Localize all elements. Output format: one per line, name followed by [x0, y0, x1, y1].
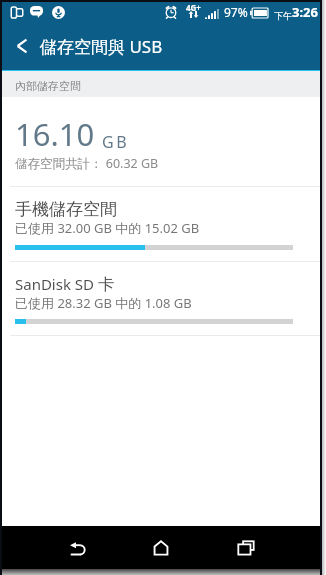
staticText: 下午 — [274, 10, 292, 21]
staticText: 手機儲存空間 — [15, 199, 117, 220]
staticText: 內部儲存空間 — [15, 79, 81, 93]
button[interactable]: Navigate up — [0, 27, 38, 65]
button[interactable]: Back — [47, 526, 105, 569]
staticText: 16.10 — [15, 113, 95, 155]
staticText: 已使用 32.00 GB 中的 15.02 GB — [15, 219, 200, 237]
staticText: SanDisk SD 卡 — [15, 274, 115, 295]
staticText: 4G+ — [186, 2, 201, 13]
button[interactable]: 16.10 — [0, 97, 326, 186]
staticText: 3:26 — [292, 3, 318, 21]
staticText: 儲存空間與 USB — [40, 35, 163, 58]
staticText: 儲存空間共計： 60.32 GB — [15, 155, 159, 172]
button[interactable]: Recent apps — [217, 526, 275, 569]
button[interactable]: 手機儲存空間 — [0, 187, 326, 261]
button[interactable]: SanDisk SD 卡 — [0, 262, 326, 335]
staticText: 97% — [224, 4, 248, 20]
button[interactable]: Home — [132, 526, 190, 569]
staticText: GB — [102, 131, 130, 153]
staticText: 已使用 28.32 GB 中的 1.08 GB — [15, 294, 192, 312]
